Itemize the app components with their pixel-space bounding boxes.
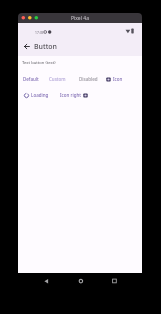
button[interactable]: Custom — [49, 76, 66, 82]
staticText: 17:35 — [35, 30, 44, 34]
staticText: Button — [34, 42, 57, 52]
staticText: Loading — [31, 92, 49, 98]
button[interactable] — [22, 42, 31, 51]
staticText: Text button (text) — [22, 60, 56, 66]
button[interactable] — [40, 275, 52, 287]
button[interactable] — [75, 275, 87, 287]
staticText: Pixel 4a — [71, 15, 89, 22]
button[interactable]: Icon right — [60, 92, 88, 98]
button[interactable]: Loading — [24, 92, 49, 98]
button[interactable]: Icon — [106, 76, 123, 82]
button[interactable]: Default — [23, 76, 39, 82]
button[interactable]: Disabled — [79, 76, 98, 82]
staticText: Icon right — [60, 92, 81, 98]
button[interactable] — [108, 275, 120, 287]
staticText: Icon — [113, 76, 123, 82]
